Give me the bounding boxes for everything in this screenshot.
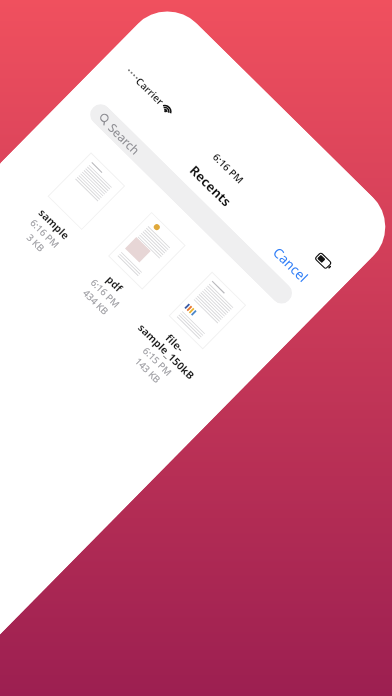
button[interactable]: Cancel bbox=[259, 234, 313, 287]
staticText: 6:16 PM bbox=[88, 276, 122, 310]
staticText: pdf bbox=[103, 272, 126, 295]
button[interactable]: pdf bbox=[61, 199, 199, 337]
button[interactable]: file-sample_150kB bbox=[113, 258, 259, 405]
staticText: Recents bbox=[186, 161, 236, 211]
staticText: 434 KB bbox=[80, 287, 111, 318]
other: Battery bbox=[314, 252, 334, 272]
staticText: Carrier bbox=[133, 74, 167, 108]
staticText: 6:16 PM bbox=[210, 150, 247, 187]
button[interactable]: Search bbox=[86, 100, 296, 308]
button[interactable]: sample bbox=[0, 139, 138, 277]
staticText: Search bbox=[105, 119, 143, 158]
staticText: Cancel bbox=[269, 243, 312, 286]
staticText: 6:15 PM bbox=[140, 344, 175, 379]
staticText: 143 KB bbox=[132, 355, 163, 386]
staticText: file-sample_150kB bbox=[131, 308, 210, 386]
staticText: 3 KB bbox=[24, 231, 47, 254]
staticText: sample bbox=[36, 206, 72, 242]
staticText: 6:16 PM bbox=[27, 216, 62, 251]
